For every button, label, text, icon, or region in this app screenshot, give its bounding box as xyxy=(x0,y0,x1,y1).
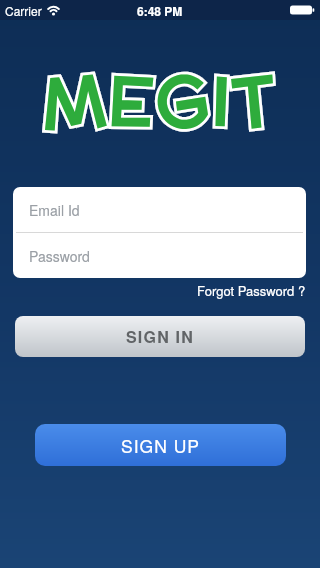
staticText: T xyxy=(229,49,279,152)
staticText: I xyxy=(208,50,234,150)
staticText: G xyxy=(150,48,215,153)
staticText: E xyxy=(105,49,157,151)
staticText: M xyxy=(38,48,110,153)
staticText: Forgot Password ? xyxy=(197,281,306,300)
staticText: Email Id xyxy=(29,200,80,220)
staticText: G xyxy=(150,48,215,153)
button[interactable]: Password xyxy=(13,233,306,278)
staticText: E xyxy=(105,49,157,151)
staticText: 6:48 PM xyxy=(137,2,183,19)
staticText: I xyxy=(208,50,234,150)
staticText: Password xyxy=(29,246,90,266)
button[interactable]: SIGN IN xyxy=(15,316,305,357)
button[interactable]: SIGN UP xyxy=(35,424,286,466)
staticText: T xyxy=(229,49,279,152)
button[interactable]: Email Id xyxy=(13,187,306,232)
staticText: M xyxy=(38,48,110,153)
staticText: M xyxy=(38,48,110,153)
staticText: E xyxy=(105,49,157,151)
staticText: T xyxy=(229,49,279,152)
staticText: SIGN UP xyxy=(121,433,200,458)
staticText: Carrier xyxy=(5,2,42,19)
staticText: SIGN IN xyxy=(126,325,194,348)
staticText: I xyxy=(208,50,234,150)
button[interactable]: Forgot Password ? xyxy=(197,281,306,300)
staticText: G xyxy=(150,48,215,153)
